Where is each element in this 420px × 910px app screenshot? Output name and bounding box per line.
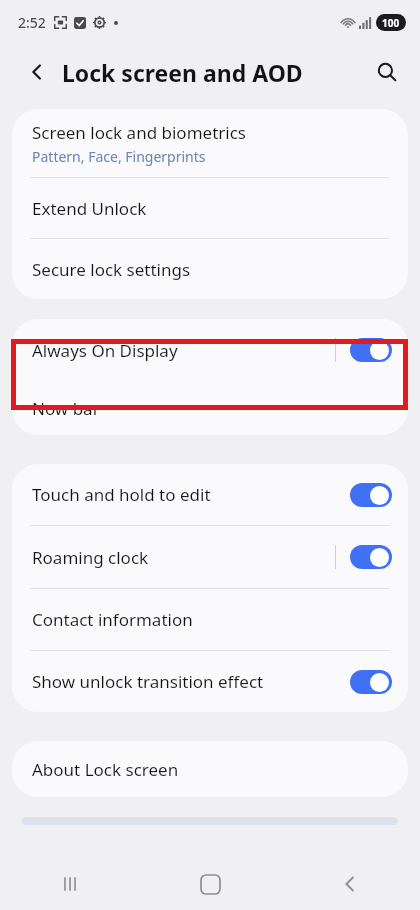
button[interactable]: Back (324, 858, 376, 910)
button[interactable]: Screen lock and biometrics (12, 109, 408, 177)
staticText: 2:52 (18, 13, 46, 32)
button[interactable]: Always On Display (12, 319, 408, 381)
button[interactable]: Home (184, 858, 236, 910)
button[interactable]: Extend Unlock (12, 178, 408, 238)
button[interactable]: Now bar (12, 381, 408, 435)
button[interactable]: About Lock screen (12, 741, 408, 797)
button[interactable]: Toggle (350, 545, 392, 569)
staticText: About Lock screen (32, 758, 179, 781)
button[interactable]: Contact information (12, 589, 408, 650)
button[interactable]: Secure lock settings (12, 239, 408, 299)
staticText: Secure lock settings (32, 258, 191, 281)
button[interactable]: Roaming clock (12, 526, 408, 588)
staticText: Always On Display (32, 339, 178, 362)
staticText: Extend Unlock (32, 197, 147, 220)
staticText: Touch and hold to edit (32, 483, 211, 506)
staticText: Roaming clock (32, 546, 149, 569)
staticText: Show unlock transition effect (32, 670, 264, 693)
staticText: Pattern, Face, Fingerprints (32, 147, 206, 166)
button[interactable]: Recent apps (44, 858, 96, 910)
button[interactable]: Toggle (350, 338, 392, 362)
staticText: Lock screen and AOD (62, 57, 303, 88)
staticText: Screen lock and biometrics (32, 121, 246, 144)
button[interactable]: Back (22, 57, 52, 87)
button[interactable]: Search (370, 55, 404, 89)
staticText: Contact information (32, 608, 193, 631)
button[interactable]: Touch and hold to edit (12, 464, 408, 525)
button[interactable]: Toggle (350, 670, 392, 694)
button[interactable]: Show unlock transition effect (12, 651, 408, 712)
staticText: Now bar (32, 397, 100, 420)
staticText: 100 (382, 16, 400, 30)
button[interactable]: Toggle (350, 483, 392, 507)
